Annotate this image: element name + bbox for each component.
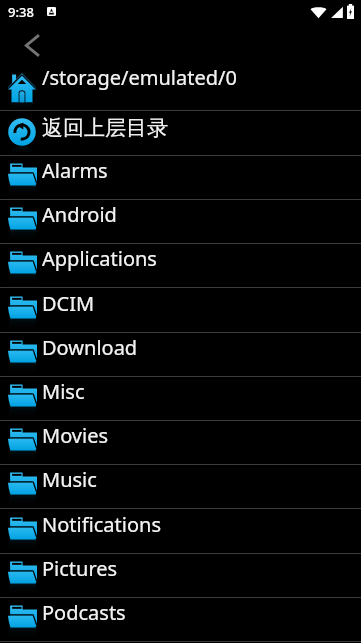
staticText: Android bbox=[42, 201, 117, 228]
button[interactable]: /storage/emulated/0 bbox=[0, 63, 361, 110]
staticText: DCIM bbox=[42, 290, 95, 317]
staticText: Applications bbox=[42, 245, 157, 272]
button[interactable]: Android bbox=[0, 200, 361, 243]
button[interactable]: Movies bbox=[0, 421, 361, 464]
button[interactable]: Download bbox=[0, 333, 361, 376]
staticText: 返回上层目录 bbox=[42, 115, 168, 141]
staticText: Music bbox=[42, 466, 97, 493]
staticText: Movies bbox=[42, 422, 109, 449]
button[interactable]: Alarms bbox=[0, 156, 361, 199]
staticText: Alarms bbox=[42, 157, 108, 184]
staticText: Podcasts bbox=[42, 599, 126, 626]
staticText: 9:38 bbox=[8, 3, 34, 21]
button[interactable]: Music bbox=[0, 465, 361, 508]
button[interactable]: Misc bbox=[0, 377, 361, 420]
button[interactable]: Back bbox=[12, 25, 52, 65]
button[interactable]: Notifications bbox=[0, 509, 361, 553]
staticText: Download bbox=[42, 334, 138, 361]
staticText: /storage/emulated/0 bbox=[42, 64, 237, 91]
button[interactable]: Pictures bbox=[0, 554, 361, 597]
button[interactable]: DCIM bbox=[0, 288, 361, 332]
staticText: Pictures bbox=[42, 555, 118, 582]
button[interactable]: Podcasts bbox=[0, 598, 361, 641]
button[interactable]: Applications bbox=[0, 244, 361, 287]
staticText: Notifications bbox=[42, 511, 161, 538]
button[interactable]: 返回上层目录 bbox=[0, 111, 361, 155]
staticText: Misc bbox=[42, 378, 85, 405]
